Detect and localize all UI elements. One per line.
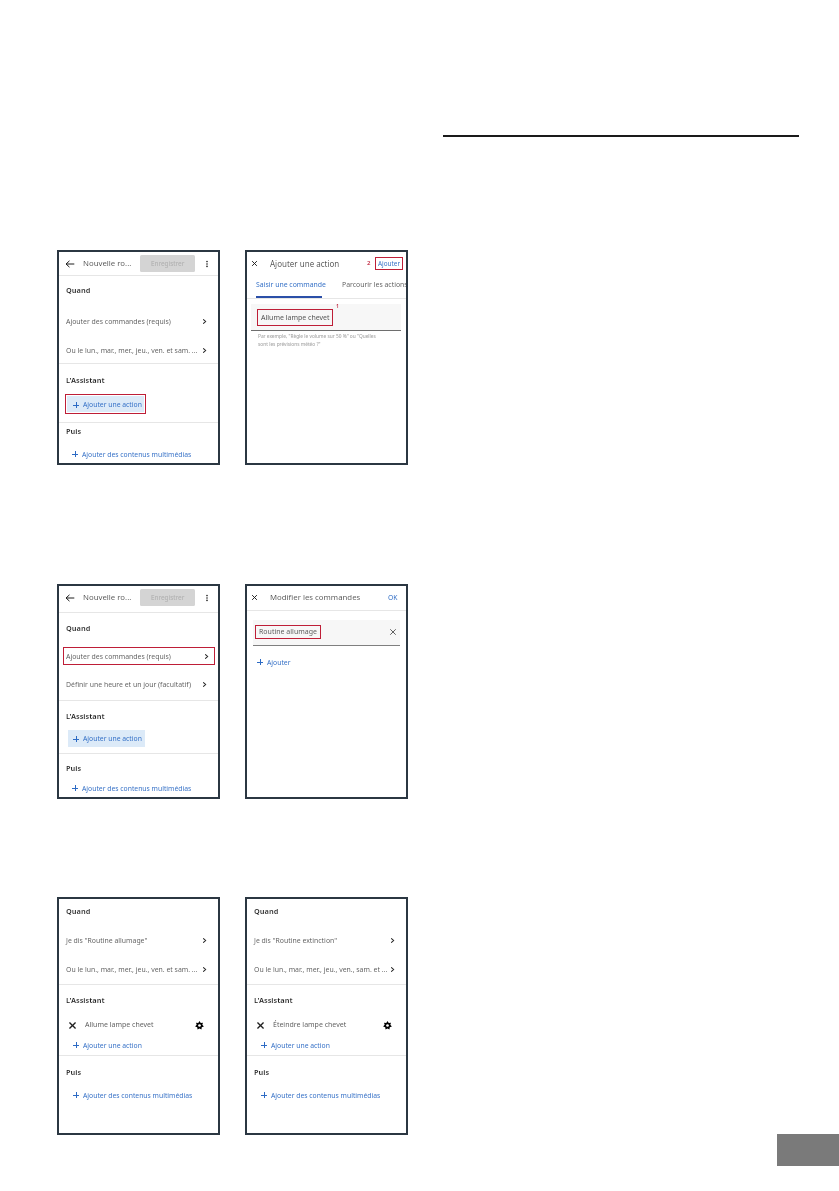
staticText: Définir une heure et un jour (facultatif… [66, 680, 201, 689]
button[interactable]: Ajouter une action [245, 1038, 408, 1052]
button[interactable]: Ajouter des commandes (requis) [57, 310, 220, 332]
staticText: Éteindre lampe chevet [273, 1020, 383, 1030]
staticText: Ajouter des commandes (requis) [66, 652, 203, 661]
staticText: Enregistrer [151, 593, 185, 602]
staticText: Allume lampe chevet [85, 1020, 195, 1030]
staticText: Ajouter une action [83, 400, 142, 409]
button[interactable]: Ou le lun., mar., mer., jeu., ven. et sa… [57, 958, 220, 980]
staticText: Je dis "Routine extinction" [254, 936, 389, 945]
button[interactable]: More options [202, 593, 212, 603]
button[interactable]: Ou le lun., mar., mer., jeu., ven., sam.… [245, 958, 408, 980]
staticText: L'Assistant [66, 375, 105, 385]
button[interactable]: Éteindre lampe chevet [245, 1017, 408, 1033]
staticText: Ajouter des commandes (requis) [66, 317, 201, 326]
button[interactable]: More options [202, 259, 212, 269]
staticText: Ajouter une action [83, 734, 142, 743]
staticText: L'Assistant [66, 995, 105, 1005]
staticText: Quand [66, 623, 91, 633]
button[interactable]: Close [249, 258, 260, 269]
button[interactable]: Ajouter une action [67, 396, 144, 412]
button[interactable]: Je dis "Routine allumage" [57, 929, 220, 951]
button[interactable]: Ajouter des commandes (requis) [63, 647, 215, 665]
staticText: Quand [66, 906, 91, 916]
staticText: Modifier les commandes [270, 592, 361, 603]
staticText: Ajouter des contenus multimédias [83, 1091, 193, 1100]
staticText: Saisir une commande [256, 280, 326, 289]
button[interactable]: Close [249, 592, 260, 603]
staticText: Ajouter une action [271, 1041, 330, 1050]
staticText: Ajouter une action [270, 258, 340, 269]
button[interactable]: Back [64, 592, 76, 604]
staticText: 2 [367, 259, 371, 267]
staticText: Quand [66, 285, 91, 295]
staticText: Puis [66, 426, 82, 436]
button[interactable]: Ou le lun., mar., mer., jeu., ven. et sa… [57, 339, 220, 361]
staticText: Ajouter des contenus multimédias [82, 784, 192, 793]
staticText: sont les prévisions météo ?" [258, 341, 321, 348]
button[interactable]: Saisir une commande [256, 278, 342, 291]
staticText: 1 [336, 303, 339, 310]
staticText: Parcourir les actions p [342, 280, 408, 289]
button[interactable]: Enregistrer [140, 589, 195, 606]
button[interactable]: Ajouter [375, 257, 403, 270]
button[interactable]: Ajouter des contenus multimédias [57, 447, 220, 461]
staticText: OK [388, 593, 398, 602]
staticText: Ou le lun., mar., mer., jeu., ven. et sa… [66, 346, 201, 355]
staticText: Ajouter [378, 259, 401, 268]
button[interactable]: Parcourir les actions p [342, 278, 408, 291]
staticText: Ajouter [267, 658, 291, 667]
button[interactable]: Back [64, 258, 76, 270]
staticText: Puis [254, 1067, 270, 1077]
staticText: L'Assistant [254, 995, 293, 1005]
staticText: Quand [254, 906, 279, 916]
button[interactable]: Ajouter une action [57, 1038, 220, 1052]
button[interactable]: Clear [387, 626, 398, 637]
staticText: Puis [66, 1067, 82, 1077]
staticText: Ou le lun., mar., mer., jeu., ven., sam.… [254, 965, 389, 974]
button[interactable]: Définir une heure et un jour (facultatif… [57, 673, 220, 695]
staticText: Allume lampe chevet [261, 313, 330, 323]
staticText: Par exemple, "Règle le volume sur 50 %" … [258, 333, 376, 340]
staticText: Puis [66, 763, 82, 773]
staticText: Nouvelle ro... [83, 592, 132, 603]
button[interactable]: Ajouter une action [68, 730, 145, 747]
staticText: Routine allumage [259, 627, 317, 637]
staticText: Je dis "Routine allumage" [66, 936, 201, 945]
button[interactable]: Je dis "Routine extinction" [245, 929, 408, 951]
button[interactable]: Allume lampe chevet [57, 1017, 220, 1033]
staticText: Ajouter des contenus multimédias [271, 1091, 381, 1100]
button[interactable]: Ajouter des contenus multimédias [57, 781, 220, 795]
button[interactable]: Ajouter des contenus multimédias [245, 1088, 408, 1102]
staticText: Ajouter des contenus multimédias [82, 450, 192, 459]
button[interactable]: Ajouter [245, 655, 408, 669]
staticText: Ajouter une action [83, 1041, 142, 1050]
staticText: Ou le lun., mar., mer., jeu., ven. et sa… [66, 965, 201, 974]
button[interactable]: Ajouter des contenus multimédias [57, 1088, 220, 1102]
button[interactable]: OK [386, 590, 400, 605]
button[interactable]: Enregistrer [140, 255, 195, 272]
staticText: L'Assistant [66, 711, 105, 721]
staticText: Nouvelle ro... [83, 258, 132, 269]
staticText: Enregistrer [151, 259, 185, 268]
